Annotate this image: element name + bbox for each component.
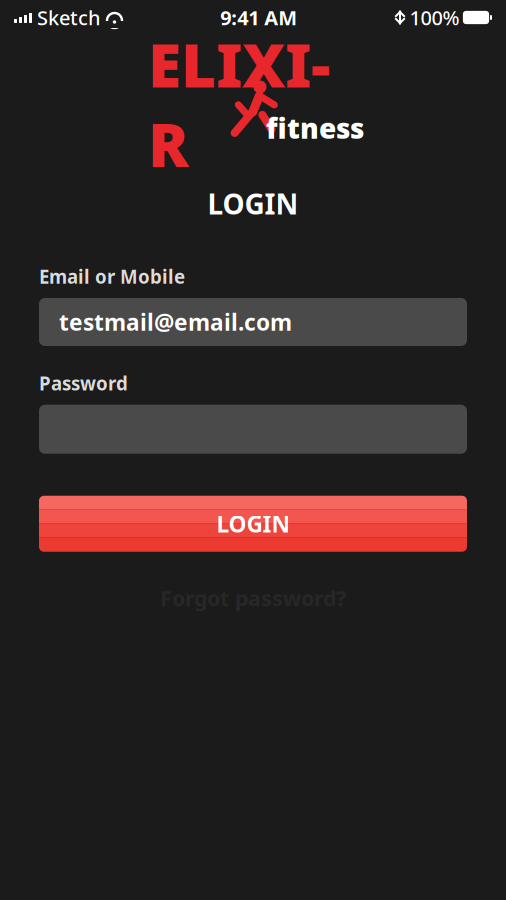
staticText: LOGIN — [216, 509, 289, 539]
staticText: fitness — [266, 109, 364, 147]
button[interactable]: Forgot password? — [160, 584, 346, 612]
staticText: 100% — [409, 4, 459, 31]
staticText: ELIXIR — [148, 24, 330, 184]
staticText: LOGIN — [207, 185, 298, 222]
button[interactable]: testmail@email.com — [39, 298, 467, 346]
staticText: testmail@email.com — [59, 307, 292, 337]
staticText: Password — [39, 371, 128, 396]
staticText: 9:41 AM — [220, 4, 297, 31]
staticText: Sketch — [37, 4, 101, 31]
staticText: Email or Mobile — [39, 264, 185, 289]
button[interactable]: LOGIN — [39, 496, 467, 552]
staticText: Forgot password? — [160, 584, 346, 612]
